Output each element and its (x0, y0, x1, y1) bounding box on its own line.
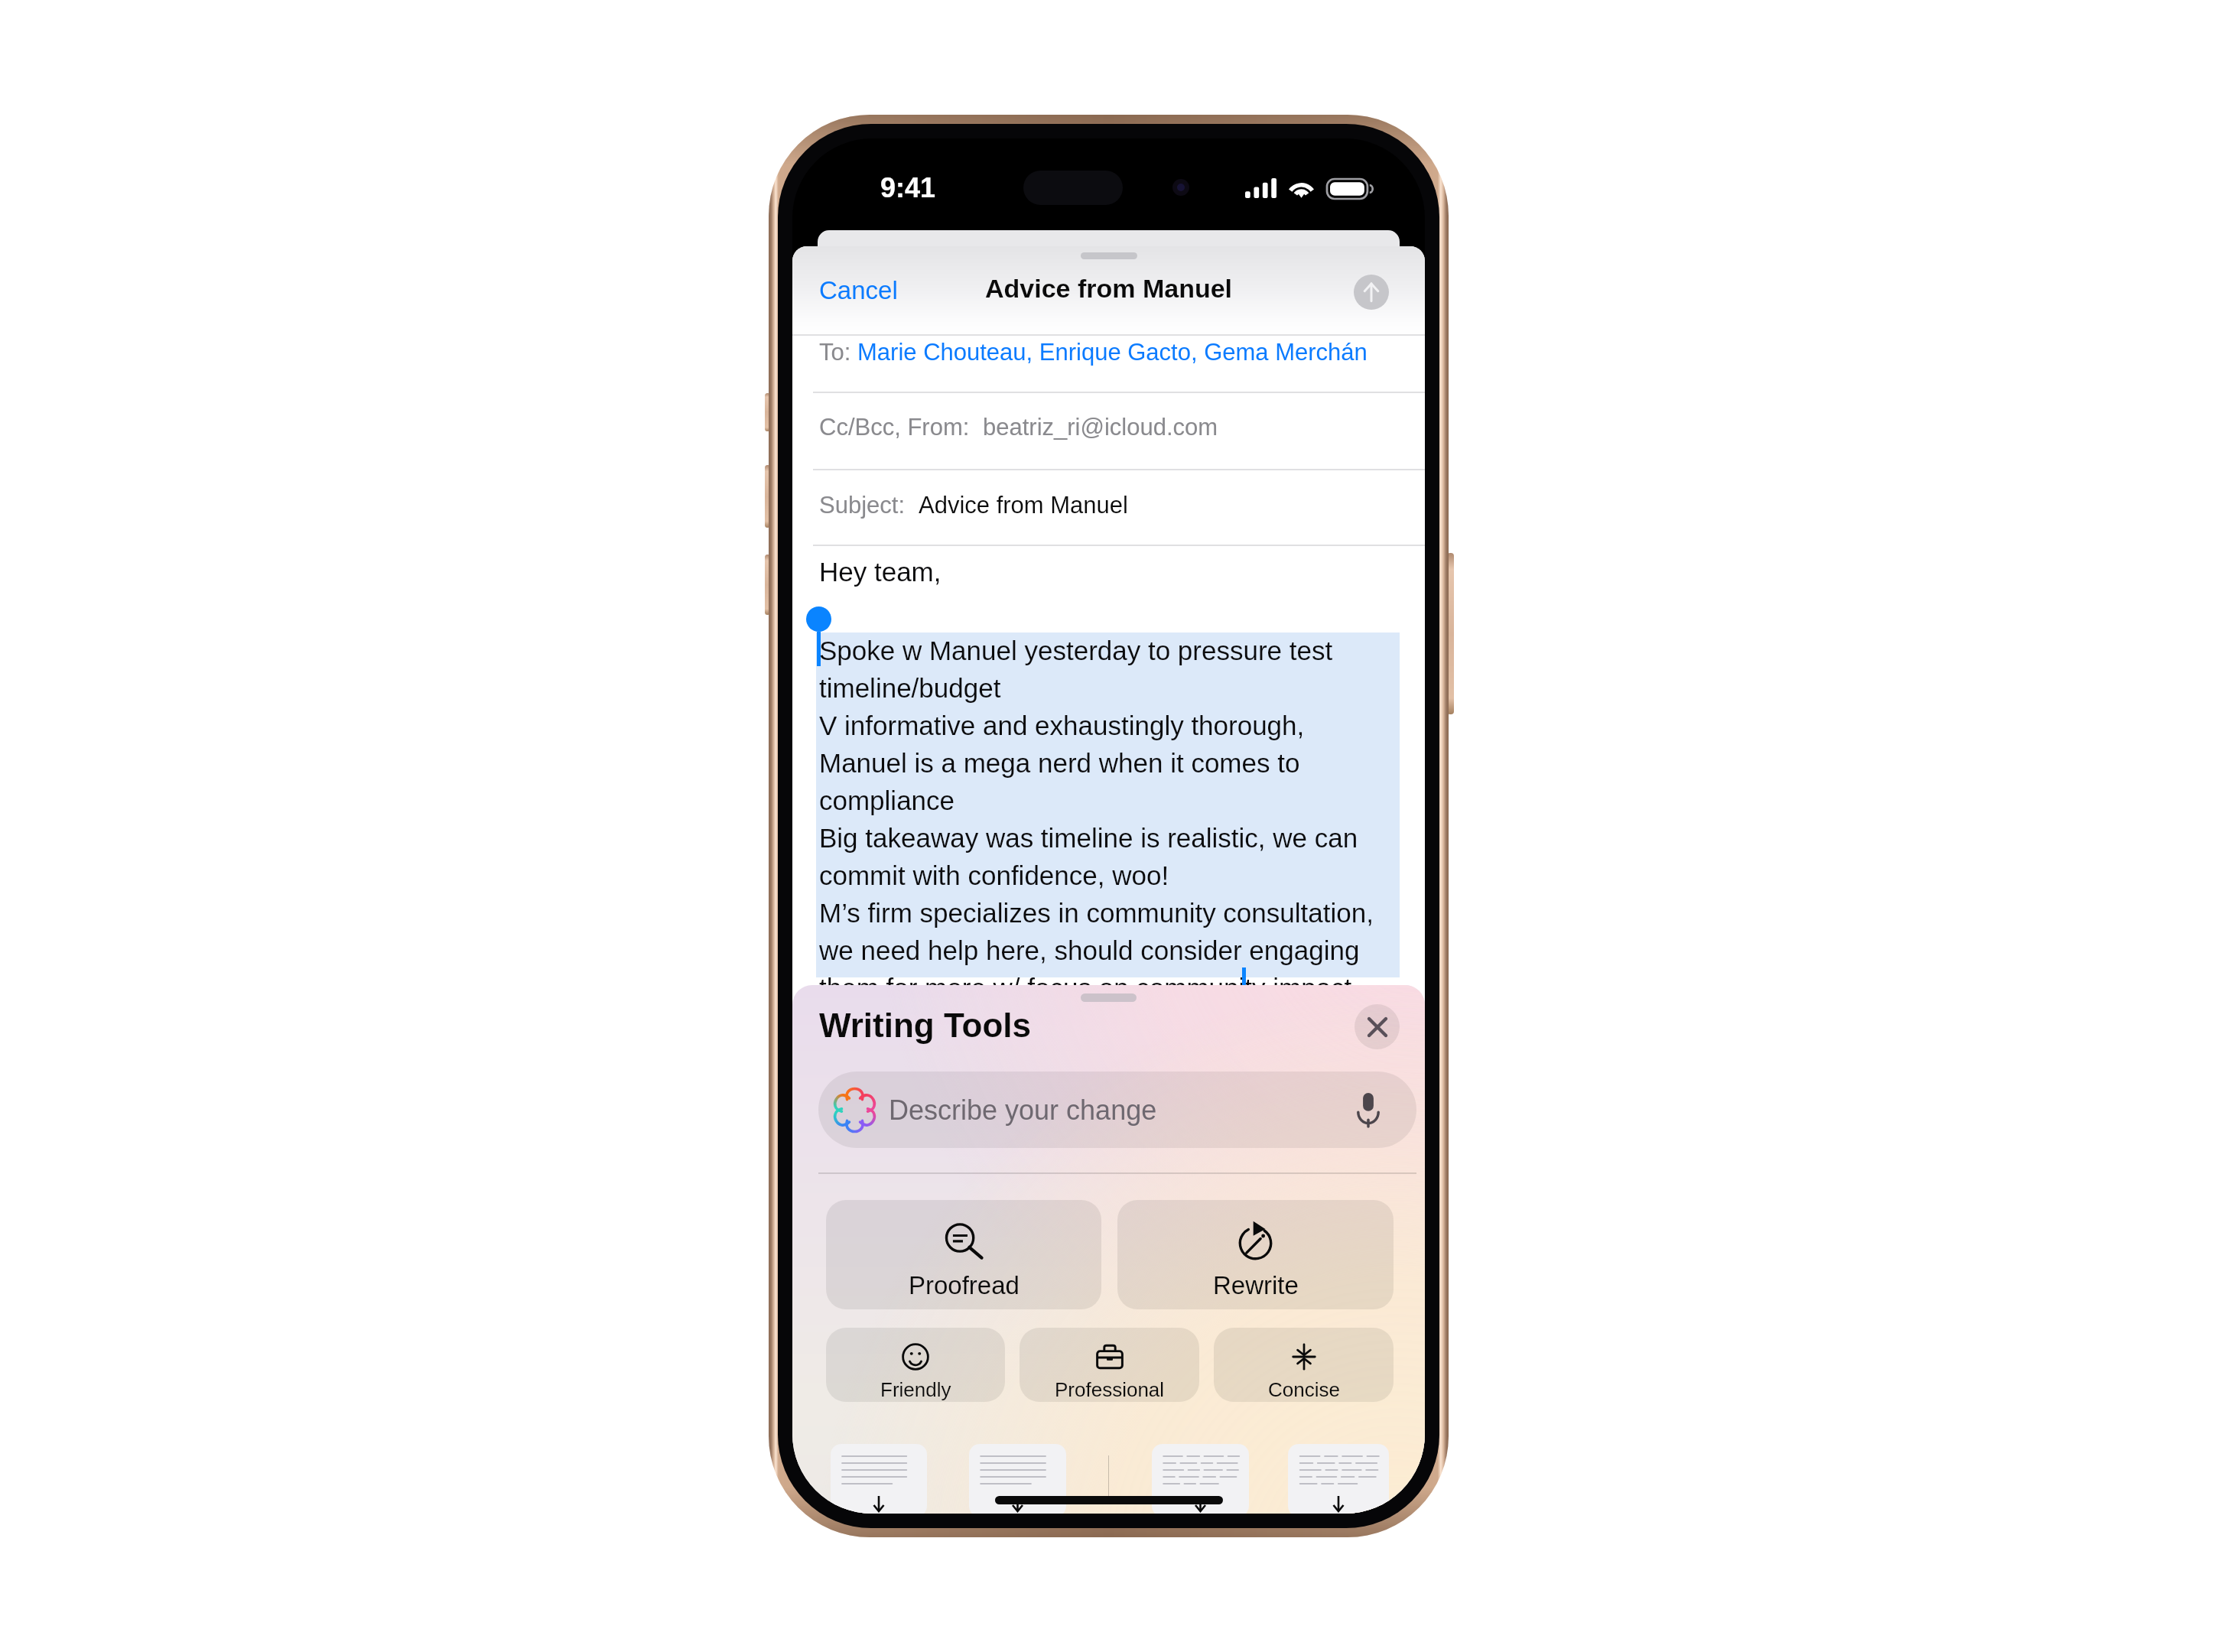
staticText: Advice from Manuel (919, 492, 1128, 519)
staticText: Describe your change (889, 1094, 1157, 1125)
staticText: Concise (1268, 1378, 1340, 1400)
staticText: beatriz_ri@icloud.com (983, 414, 1218, 441)
staticText: 9:41 (880, 172, 936, 203)
button[interactable]: Close Writing Tools (1355, 1004, 1400, 1049)
staticText: Subject: (819, 492, 919, 519)
button[interactable]: Rewrite (1117, 1200, 1394, 1309)
button[interactable]: Cancel (811, 267, 906, 314)
staticText: Friendly (880, 1378, 951, 1400)
staticText: Professional (1055, 1378, 1165, 1400)
button[interactable]: Suggestion 2 (1152, 1444, 1249, 1514)
button[interactable]: Send (1354, 275, 1389, 310)
button[interactable]: Suggestion 0 (831, 1444, 927, 1514)
button[interactable]: Proofread (826, 1200, 1101, 1309)
staticText: Hey team, (819, 557, 942, 587)
staticText: Rewrite (1213, 1271, 1299, 1299)
staticText: Advice from Manuel (985, 274, 1233, 303)
button[interactable]: Friendly (826, 1328, 1005, 1402)
button[interactable]: Concise (1214, 1328, 1394, 1402)
staticText: Proofread (909, 1271, 1020, 1299)
staticText: Writing Tools (819, 1006, 1031, 1044)
button[interactable]: Suggestion 3 (1288, 1444, 1389, 1514)
staticText: Marie Chouteau, Enrique Gacto, Gema Merc… (857, 339, 1368, 366)
staticText: Spoke w Manuel yesterday to pressure tes… (819, 636, 1374, 1003)
staticText: Cancel (819, 276, 898, 304)
staticText: Cc/Bcc, From: (819, 414, 983, 441)
staticText: To: (819, 339, 857, 366)
button[interactable]: Professional (1020, 1328, 1199, 1402)
button[interactable]: Suggestion 1 (969, 1444, 1066, 1514)
button[interactable]: Describe your change (818, 1072, 1416, 1148)
